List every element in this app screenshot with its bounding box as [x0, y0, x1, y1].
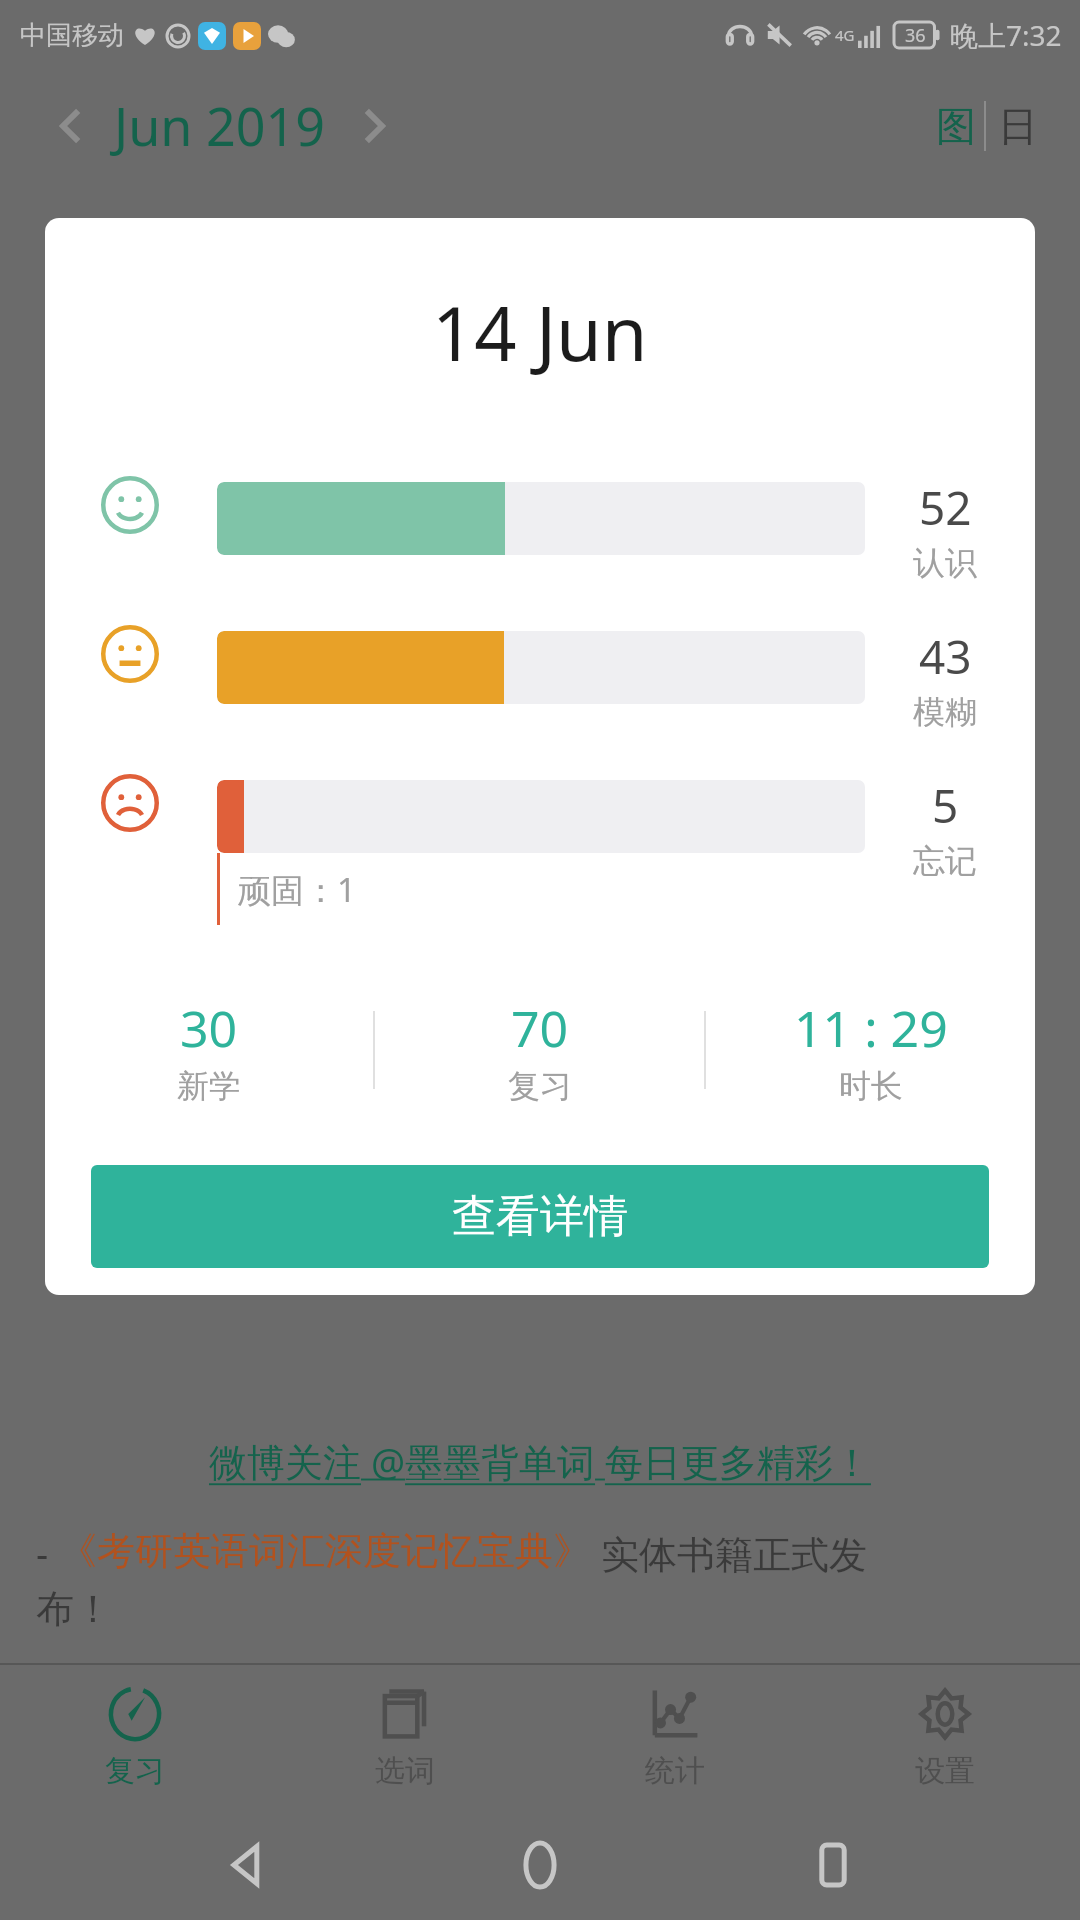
staticText: 日: [998, 101, 1038, 151]
staticText: 统计: [645, 1752, 705, 1790]
button[interactable]: Back: [203, 1820, 293, 1910]
staticText: 布！: [36, 1585, 112, 1633]
staticText: 14 Jun: [432, 282, 648, 383]
staticText: 5: [932, 774, 959, 837]
staticText: 36: [905, 23, 926, 48]
button[interactable]: Next month: [345, 97, 403, 155]
staticText: 70: [511, 994, 569, 1062]
button[interactable]: 查看详情: [91, 1165, 989, 1268]
staticText: 实体书籍正式发: [591, 1527, 867, 1579]
staticText: 图: [936, 101, 976, 151]
staticText: 复习: [508, 1066, 572, 1106]
staticText: 30: [180, 994, 238, 1062]
button[interactable]: 选词: [270, 1665, 540, 1810]
staticText: 中国移动: [20, 19, 124, 52]
staticText: 52: [919, 476, 972, 539]
button[interactable]: 统计: [540, 1665, 810, 1810]
button[interactable]: Previous month: [42, 97, 100, 155]
staticText: 晚上7:32: [950, 16, 1062, 54]
staticText: 选词: [375, 1752, 435, 1790]
button[interactable]: 设置: [810, 1665, 1080, 1810]
staticText: 微博关注 @墨墨背单词 每日更多精彩！: [209, 1435, 871, 1487]
button[interactable]: 30: [45, 994, 373, 1106]
staticText: 4G: [835, 25, 855, 45]
button[interactable]: Home: [495, 1820, 585, 1910]
staticText: 《考研英语词汇深度记忆宝典》: [59, 1527, 591, 1575]
button[interactable]: Recents: [788, 1820, 878, 1910]
button[interactable]: 图: [936, 101, 976, 151]
staticText: 43: [919, 625, 972, 688]
staticText: 认识: [913, 543, 977, 583]
button[interactable]: 日: [998, 101, 1038, 151]
staticText: 顽固：1: [238, 867, 356, 912]
staticText: 忘记: [913, 841, 977, 881]
button[interactable]: 复习: [0, 1665, 270, 1810]
staticText: 模糊: [913, 692, 977, 732]
staticText: Jun 2019: [114, 90, 325, 161]
staticText: 复习: [105, 1752, 165, 1790]
staticText: 新学: [177, 1066, 241, 1106]
staticText: 时长: [839, 1066, 903, 1106]
staticText: 11 : 29: [794, 994, 948, 1062]
staticText: 查看详情: [452, 1189, 628, 1244]
staticText: -: [36, 1527, 59, 1579]
staticText: 设置: [915, 1752, 975, 1790]
button[interactable]: 11 : 29: [706, 994, 1035, 1106]
button[interactable]: 70: [375, 994, 704, 1106]
